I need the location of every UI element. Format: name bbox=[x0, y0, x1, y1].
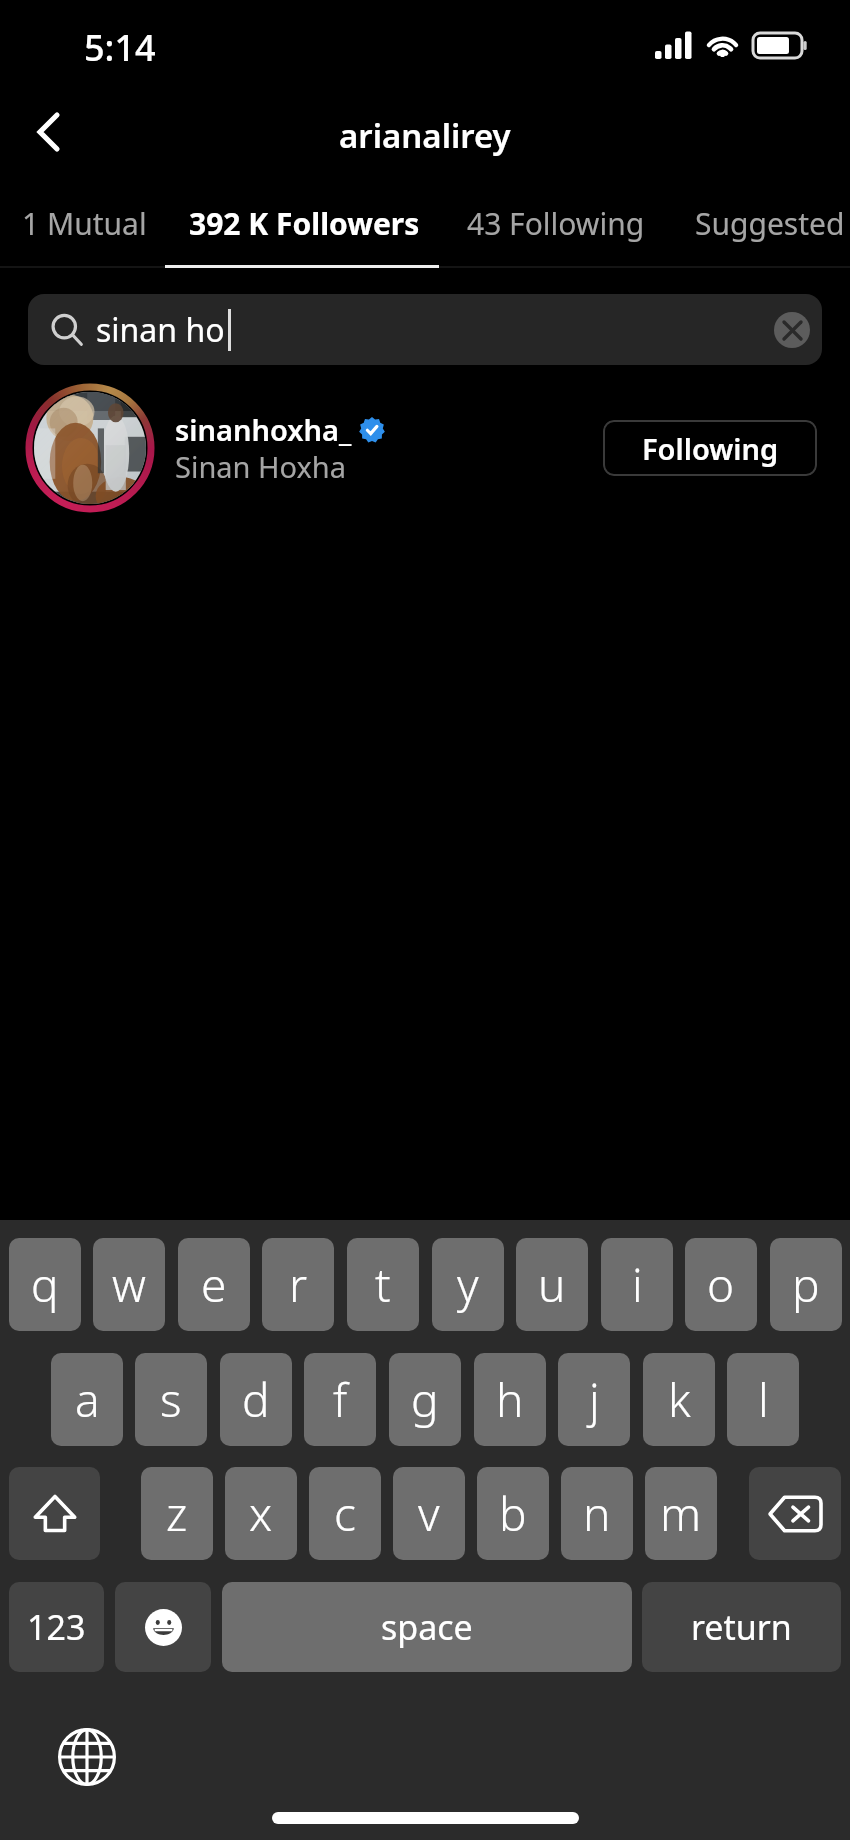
button[interactable]: c bbox=[309, 1467, 381, 1560]
button[interactable]: p bbox=[770, 1238, 842, 1331]
staticText: sinanhoxha_ bbox=[175, 410, 352, 449]
staticText: 123 bbox=[27, 1604, 86, 1650]
staticText: j bbox=[589, 1368, 600, 1431]
button[interactable]: g bbox=[389, 1353, 461, 1446]
staticText: o bbox=[707, 1253, 735, 1316]
button[interactable]: j bbox=[558, 1353, 630, 1446]
button[interactable]: u bbox=[516, 1238, 588, 1331]
button[interactable]: Back bbox=[3, 87, 93, 177]
staticText: t bbox=[375, 1253, 391, 1316]
button[interactable]: y bbox=[432, 1238, 504, 1331]
staticText: k bbox=[668, 1368, 691, 1431]
staticText: r bbox=[289, 1253, 308, 1316]
button[interactable]: z bbox=[141, 1467, 213, 1560]
staticText: 43 Following bbox=[467, 203, 645, 244]
staticText: d bbox=[242, 1368, 270, 1431]
staticText: b bbox=[499, 1482, 527, 1545]
staticText: arianalirey bbox=[339, 113, 511, 158]
button[interactable]: k bbox=[643, 1353, 715, 1446]
button[interactable]: space bbox=[222, 1582, 632, 1672]
button[interactable]: Suggested bbox=[678, 182, 850, 264]
button[interactable] bbox=[0, 378, 850, 518]
button[interactable]: 43 Following bbox=[443, 182, 669, 264]
button[interactable]: Shift bbox=[9, 1467, 100, 1560]
button[interactable]: t bbox=[347, 1238, 419, 1331]
staticText: s bbox=[160, 1368, 182, 1431]
staticText: h bbox=[496, 1368, 524, 1431]
staticText: g bbox=[411, 1368, 439, 1431]
button[interactable]: v bbox=[393, 1467, 465, 1560]
button[interactable]: 1 Mutual bbox=[2, 182, 167, 264]
staticText: v bbox=[418, 1482, 440, 1545]
staticText: e bbox=[201, 1253, 227, 1316]
staticText: w bbox=[112, 1253, 146, 1316]
button[interactable]: l bbox=[727, 1353, 799, 1446]
staticText: p bbox=[792, 1253, 820, 1316]
staticText: 392 K Followers bbox=[189, 203, 420, 244]
button[interactable]: sinan ho bbox=[28, 294, 822, 365]
button[interactable]: Clear text bbox=[774, 312, 810, 348]
button[interactable]: d bbox=[220, 1353, 292, 1446]
button[interactable]: x bbox=[225, 1467, 297, 1560]
button[interactable]: Backspace bbox=[749, 1467, 841, 1560]
button[interactable]: i bbox=[601, 1238, 673, 1331]
button[interactable]: e bbox=[178, 1238, 250, 1331]
staticText: m bbox=[660, 1482, 702, 1545]
button[interactable]: w bbox=[93, 1238, 165, 1331]
button[interactable]: b bbox=[477, 1467, 549, 1560]
button[interactable]: Numbers bbox=[9, 1582, 104, 1672]
staticText: c bbox=[334, 1482, 356, 1545]
button[interactable]: 392 K Followers bbox=[166, 182, 442, 264]
button[interactable]: n bbox=[561, 1467, 633, 1560]
staticText: u bbox=[538, 1253, 566, 1316]
staticText: Sinan Hoxha bbox=[175, 447, 347, 486]
staticText: q bbox=[31, 1253, 59, 1316]
staticText: Suggested bbox=[695, 203, 845, 244]
staticText: f bbox=[333, 1368, 348, 1431]
staticText: Following bbox=[642, 429, 779, 468]
button[interactable]: q bbox=[9, 1238, 81, 1331]
button[interactable]: Emoji bbox=[115, 1582, 211, 1672]
button[interactable]: Following bbox=[603, 420, 817, 476]
staticText: y bbox=[457, 1253, 479, 1316]
button[interactable]: return bbox=[642, 1582, 841, 1672]
staticText: a bbox=[75, 1368, 100, 1431]
staticText: z bbox=[166, 1482, 188, 1545]
button[interactable]: s bbox=[135, 1353, 207, 1446]
button[interactable]: a bbox=[51, 1353, 123, 1446]
staticText: space bbox=[381, 1604, 473, 1650]
staticText: l bbox=[758, 1368, 769, 1431]
staticText: return bbox=[691, 1604, 792, 1650]
staticText: x bbox=[249, 1482, 273, 1545]
staticText: 5:14 bbox=[84, 23, 156, 72]
staticText: n bbox=[583, 1482, 611, 1545]
button[interactable]: Change keyboard bbox=[47, 1717, 127, 1797]
staticText: i bbox=[632, 1253, 643, 1316]
button[interactable]: f bbox=[304, 1353, 376, 1446]
button[interactable]: m bbox=[645, 1467, 717, 1560]
button[interactable]: r bbox=[262, 1238, 334, 1331]
staticText: sinan ho bbox=[96, 308, 225, 352]
button[interactable]: o bbox=[685, 1238, 757, 1331]
staticText: 1 Mutual bbox=[22, 203, 147, 244]
button[interactable]: h bbox=[474, 1353, 546, 1446]
